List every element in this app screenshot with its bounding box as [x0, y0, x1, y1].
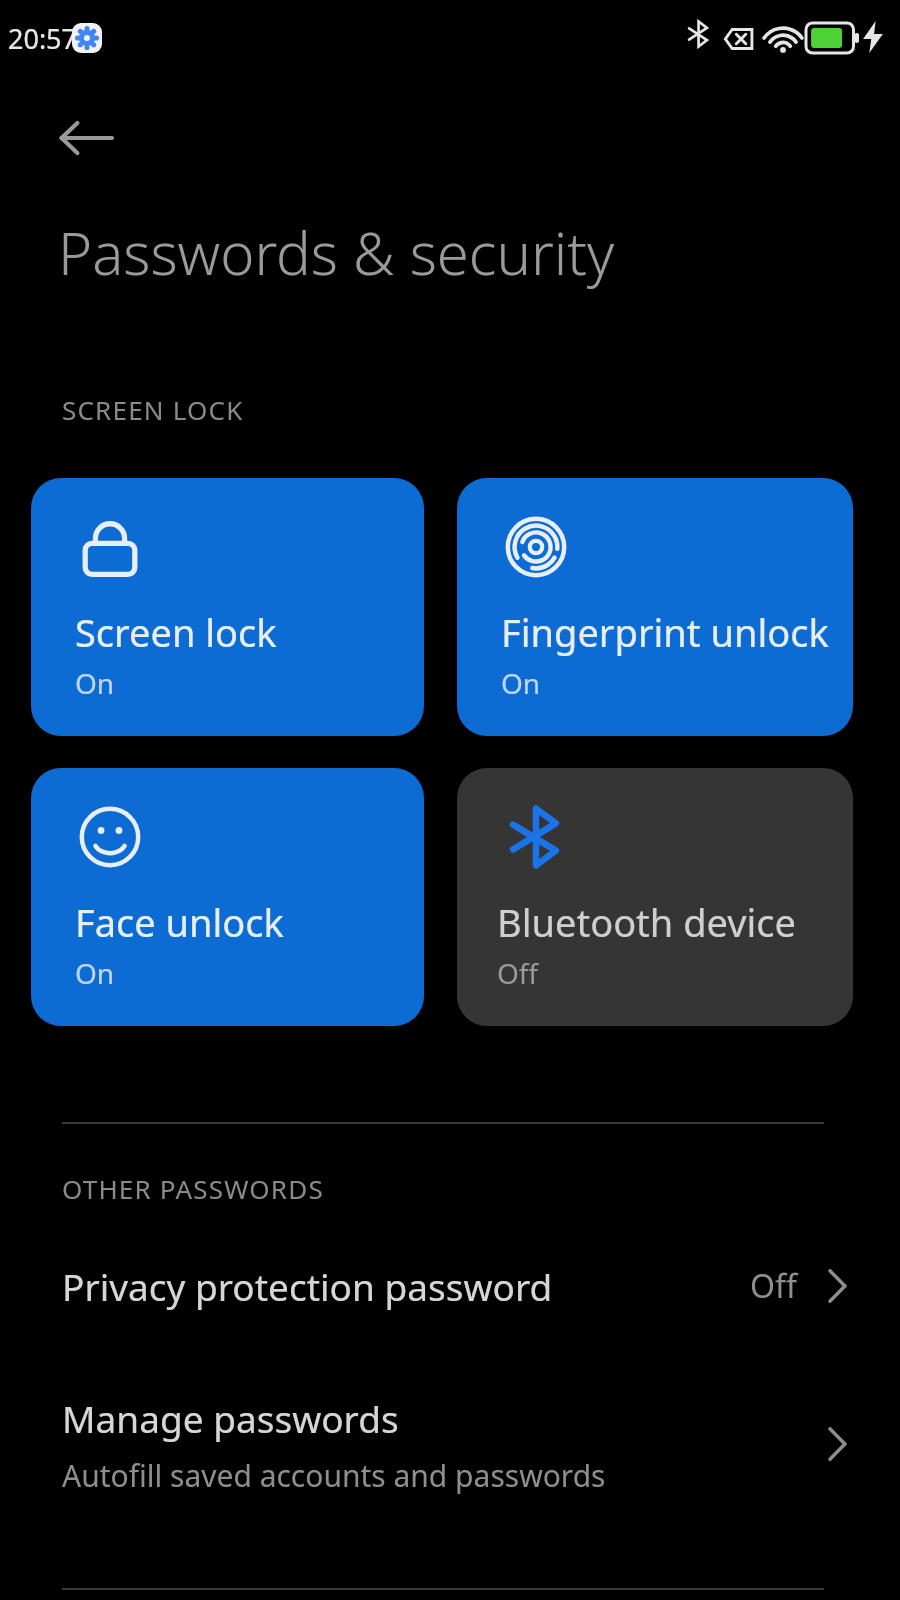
staticText: Manage passwords — [62, 1393, 399, 1443]
button[interactable]: Manage passwords — [0, 1360, 900, 1528]
staticText: Autofill saved accounts and passwords — [62, 1455, 606, 1496]
button[interactable]: Screen lock — [31, 478, 424, 736]
staticText: On — [75, 954, 115, 992]
staticText: Fingerprint unlock — [501, 606, 829, 658]
staticText: Off — [497, 954, 539, 992]
staticText: Off — [750, 1264, 798, 1308]
button[interactable]: Fingerprint unlock — [457, 478, 853, 736]
staticText: Face unlock — [75, 896, 284, 948]
staticText: OTHER PASSWORDS — [62, 1171, 324, 1206]
staticText: 20:57 — [8, 20, 78, 57]
staticText: On — [75, 664, 115, 702]
staticText: Screen lock — [75, 606, 277, 658]
staticText: On — [501, 664, 541, 702]
staticText: Passwords & security — [58, 213, 615, 292]
staticText: SCREEN LOCK — [62, 392, 244, 427]
button[interactable]: Bluetooth device — [457, 768, 853, 1026]
button[interactable]: Face unlock — [31, 768, 424, 1026]
staticText: Bluetooth device — [497, 896, 797, 948]
staticText: Privacy protection password — [62, 1261, 553, 1311]
button[interactable]: Back — [40, 104, 130, 172]
button[interactable]: Privacy protection password — [0, 1232, 900, 1340]
